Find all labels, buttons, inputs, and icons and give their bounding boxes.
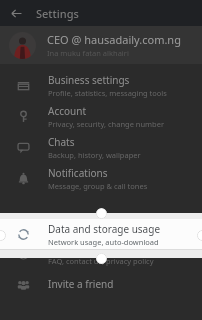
button[interactable]: Invite a friend <box>0 269 202 299</box>
staticText: Message, group & call tones <box>48 181 148 191</box>
button[interactable]: Move bottom edge <box>96 253 107 264</box>
staticText: Help <box>48 241 70 255</box>
staticText: Business settings <box>48 73 130 87</box>
staticText: Settings <box>36 6 79 21</box>
staticText: Backup, history, wallpaper <box>48 150 141 160</box>
button[interactable]: Notifications <box>0 163 202 194</box>
button[interactable]: Move right edge <box>197 230 202 241</box>
staticText: Data and storage usage <box>48 222 161 236</box>
button[interactable]: Business settings <box>0 70 202 101</box>
button[interactable]: Help <box>0 238 202 269</box>
button[interactable]: Data and storage usage <box>0 219 202 250</box>
staticText: Privacy, security, change number <box>48 119 165 129</box>
button[interactable]: Account <box>0 101 202 132</box>
staticText: FAQ, contact us, privacy policy <box>48 256 154 266</box>
button[interactable]: CEO @ hausadaily.com.ng <box>0 26 202 64</box>
button[interactable]: Back <box>6 3 26 23</box>
staticText: Chats <box>48 135 75 149</box>
staticText: Notifications <box>48 166 108 180</box>
staticText: Profile, statistics, messaging tools <box>48 88 167 98</box>
button[interactable]: Chats <box>0 132 202 163</box>
button[interactable]: Move top edge <box>96 208 107 219</box>
staticText: Invite a friend <box>48 277 114 291</box>
button[interactable]: Move left edge <box>0 230 6 241</box>
staticText: Account <box>48 104 87 118</box>
staticText: Ina muku fatan alkhairi <box>47 48 129 58</box>
staticText: CEO @ hausadaily.com.ng <box>47 32 181 47</box>
staticText: Network usage, auto-download <box>48 237 159 247</box>
